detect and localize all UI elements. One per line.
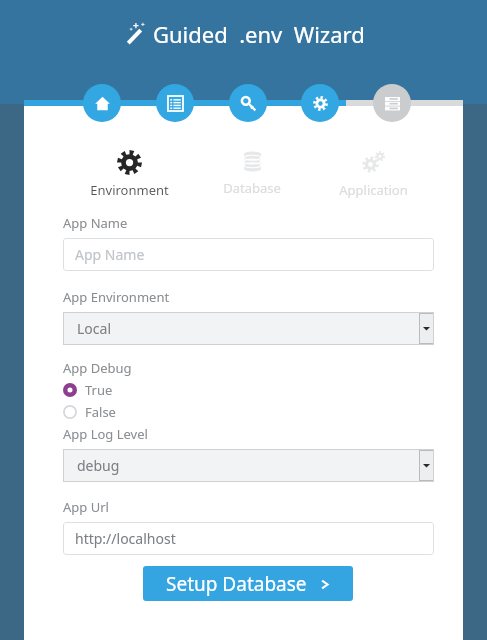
staticText: Guided .env Wizard xyxy=(153,19,365,49)
staticText: App Name xyxy=(75,245,145,264)
staticText: http://localhost xyxy=(75,529,176,548)
button[interactable]: True xyxy=(63,379,434,401)
button[interactable]: Database xyxy=(195,150,309,198)
staticText: Environment xyxy=(90,181,169,198)
staticText: Application xyxy=(339,181,408,198)
button[interactable]: http://localhost xyxy=(63,522,434,555)
staticText: True xyxy=(85,381,113,399)
button[interactable]: Application xyxy=(316,150,430,198)
button[interactable]: Key xyxy=(229,84,267,122)
button[interactable]: Server xyxy=(373,84,411,122)
staticText: App Environment xyxy=(63,288,170,306)
staticText: Local xyxy=(77,319,111,338)
button[interactable]: List xyxy=(156,84,194,122)
staticText: Database xyxy=(223,179,281,197)
button[interactable]: Settings xyxy=(301,84,339,122)
staticText: App Name xyxy=(63,214,128,232)
button[interactable]: False xyxy=(63,401,434,423)
staticText: False xyxy=(85,403,116,421)
button[interactable]: Home xyxy=(83,84,121,122)
button[interactable]: Environment xyxy=(72,150,186,198)
button[interactable]: debug xyxy=(63,449,434,482)
button[interactable]: App Name xyxy=(63,238,434,271)
staticText: App Log Level xyxy=(63,425,148,443)
staticText: App Debug xyxy=(63,359,132,377)
staticText: App Url xyxy=(63,498,109,516)
staticText: debug xyxy=(77,456,120,475)
button[interactable]: Setup Database xyxy=(143,566,353,601)
button[interactable]: Local xyxy=(63,312,434,345)
staticText: Setup Database xyxy=(166,571,307,597)
